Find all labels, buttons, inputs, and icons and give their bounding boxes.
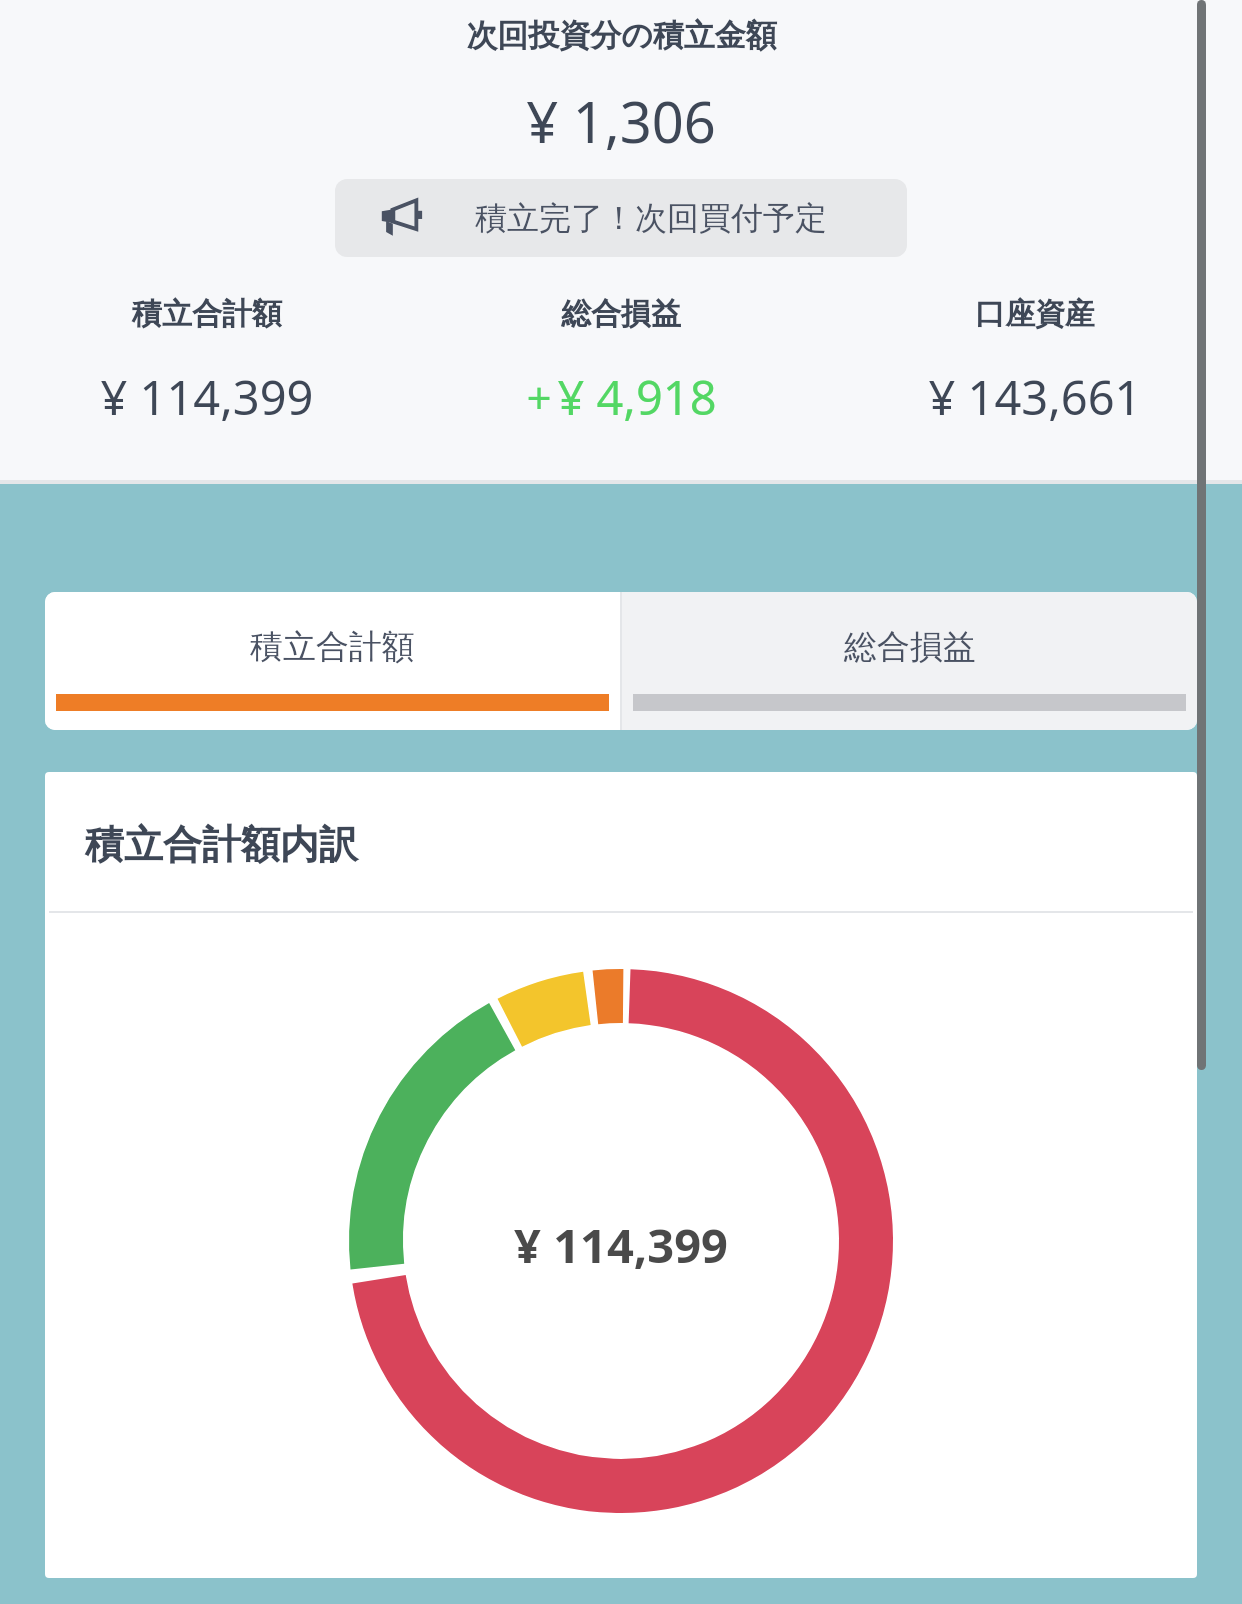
button[interactable]: お知らせ [335,179,907,257]
staticText: ¥ 114,399 [100,365,314,429]
button[interactable]: 総合損益 [622,592,1197,730]
staticText: + [526,367,552,427]
staticText: 積立合計額内訳 [85,820,358,869]
staticText: 積立合計額 [250,626,415,668]
staticText: 積立合計額 [132,295,282,333]
staticText: 総合損益 [561,295,681,333]
button[interactable]: 口座資産 [828,295,1242,429]
staticText: 総合損益 [844,626,976,668]
button[interactable]: 積立合計額 [0,295,414,429]
staticText: ¥ 114,399 [514,1213,728,1277]
button[interactable]: 総合損益 [414,295,828,429]
other: お知らせ [377,194,425,242]
staticText: ¥ 1,306 [526,83,716,159]
staticText: 口座資産 [975,295,1095,333]
button[interactable]: 積立合計額 [45,592,620,730]
staticText: ¥ 143,661 [928,365,1142,429]
staticText: 次回投資分の積立金額 [466,16,777,55]
staticText: 積立完了！次回買付予定 [475,198,827,238]
staticText: ¥ 4,918 [557,365,717,429]
